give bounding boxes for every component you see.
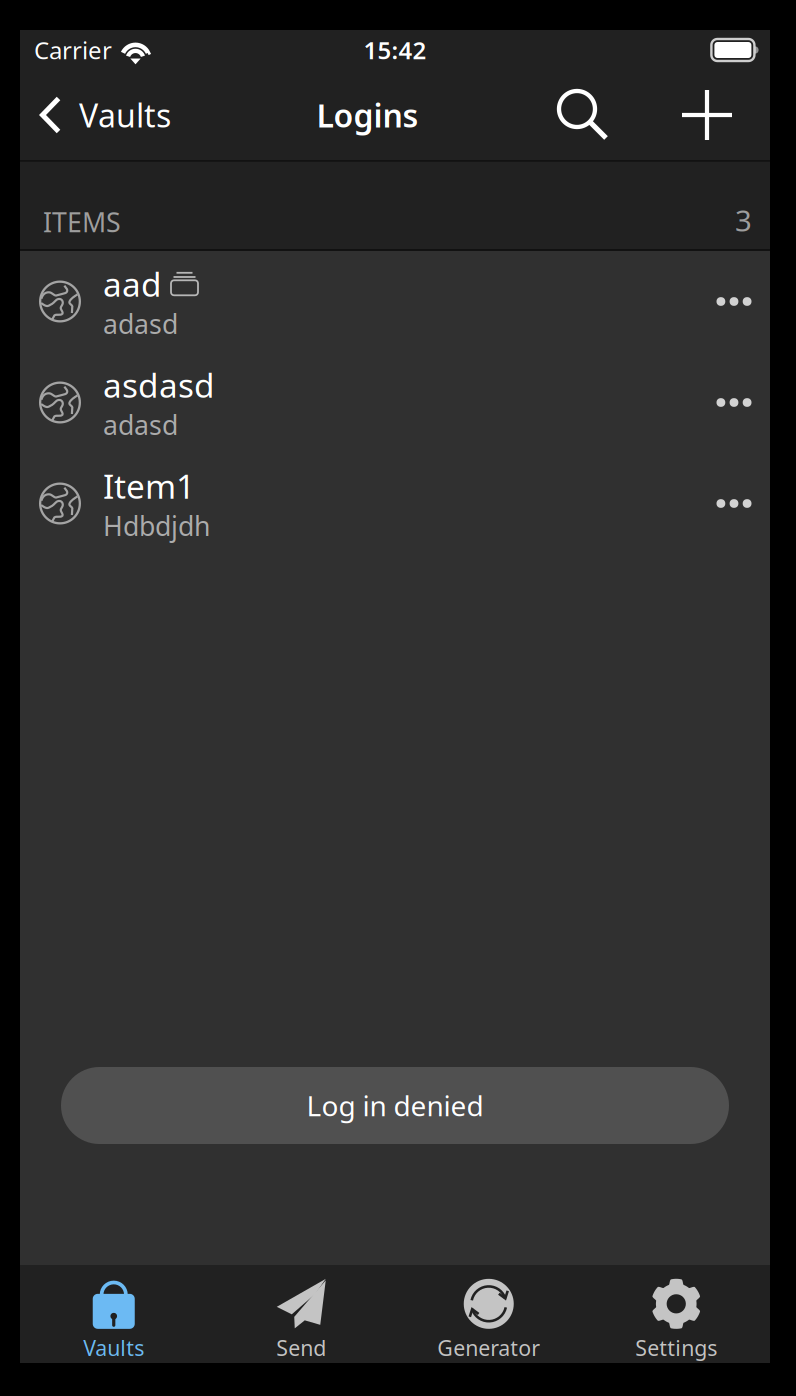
staticText: Item1 (103, 464, 195, 508)
staticText: Generator (437, 1334, 540, 1362)
staticText: Settings (635, 1334, 717, 1362)
button[interactable]: Search (554, 70, 612, 160)
staticText: adasd (103, 407, 178, 442)
staticText: Hdbdjdh (103, 508, 210, 543)
staticText: adasd (103, 306, 178, 341)
button[interactable]: Vaults (20, 1265, 207, 1363)
staticText: Send (276, 1334, 326, 1362)
button[interactable]: Settings (582, 1265, 770, 1363)
staticText: 3 (735, 200, 752, 239)
staticText: Vaults (83, 1334, 144, 1362)
staticText: Carrier (34, 34, 112, 66)
staticText: aad (103, 262, 162, 306)
staticText: ITEMS (43, 204, 121, 239)
button[interactable]: Vaults (20, 70, 181, 160)
staticText: asdasd (103, 363, 215, 407)
button[interactable]: Add item (678, 70, 736, 160)
staticText: Vaults (79, 94, 171, 136)
button[interactable]: Generator (395, 1265, 582, 1363)
button[interactable]: Send (207, 1265, 395, 1363)
staticText: 15:42 (363, 34, 426, 66)
staticText: Logins (316, 94, 418, 136)
button[interactable]: asdasd (20, 352, 770, 453)
button[interactable]: aad (20, 251, 770, 352)
button[interactable]: Log in denied (61, 1067, 729, 1144)
button[interactable]: Item1 (20, 453, 770, 554)
staticText: Log in denied (306, 1087, 483, 1124)
